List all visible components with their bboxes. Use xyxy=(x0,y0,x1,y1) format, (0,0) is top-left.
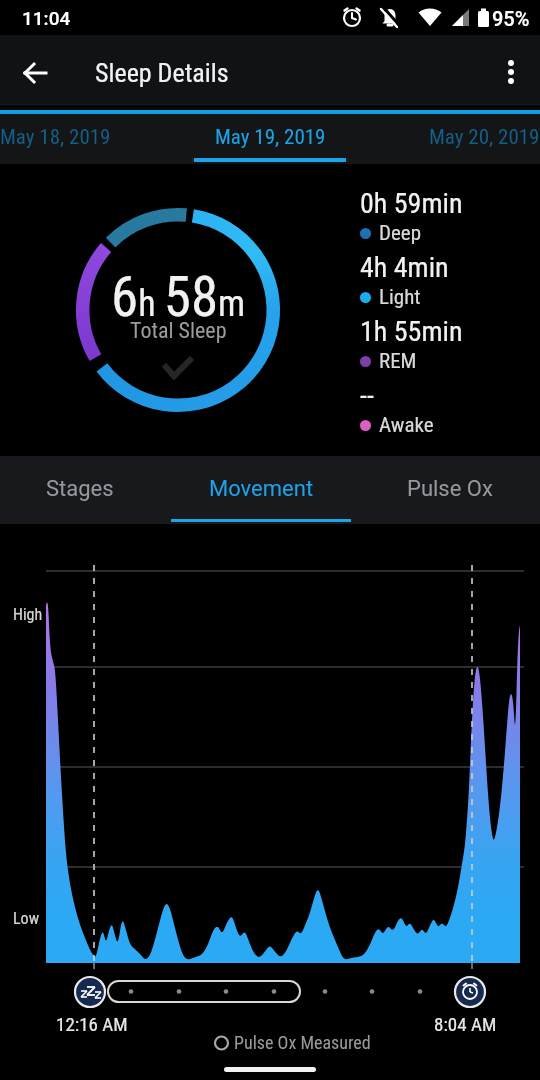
staticText: 4h 4min xyxy=(360,251,449,284)
staticText: 8:04 AM xyxy=(434,1013,497,1035)
button[interactable]: Stages xyxy=(0,456,180,522)
staticText: Sleep Details xyxy=(95,58,229,88)
staticText: High xyxy=(13,605,43,624)
staticText: 12:16 AM xyxy=(56,1013,128,1035)
staticText: Stages xyxy=(46,476,114,502)
staticText: May 19, 2019 xyxy=(215,125,326,150)
button[interactable] xyxy=(14,51,58,95)
button[interactable]: Pulse Ox xyxy=(360,456,540,522)
staticText: REM xyxy=(379,349,417,374)
staticText: 11:04 xyxy=(22,7,71,29)
button[interactable]: May 20, 2019 xyxy=(429,125,540,150)
button[interactable] xyxy=(490,52,532,94)
staticText: Light xyxy=(379,285,421,310)
staticText: 0h 59min xyxy=(360,187,463,220)
staticText: 1h 55min xyxy=(360,315,463,348)
staticText: Deep xyxy=(379,221,422,246)
button[interactable] xyxy=(73,975,107,1009)
button[interactable]: Pulse Ox Measured xyxy=(213,1032,371,1053)
staticText: 6h 58m xyxy=(111,265,246,329)
staticText: Pulse Ox Measured xyxy=(234,1032,371,1053)
button[interactable]: May 19, 2019 xyxy=(194,114,346,164)
button[interactable] xyxy=(453,975,487,1009)
staticText: -- xyxy=(360,379,374,412)
staticText: Total Sleep xyxy=(130,318,227,344)
staticText: 95% xyxy=(492,7,530,30)
staticText: Movement xyxy=(209,476,314,502)
staticText: Awake xyxy=(379,413,434,438)
button[interactable]: Movement xyxy=(180,456,360,522)
button[interactable]: May 18, 2019 xyxy=(0,125,111,150)
staticText: Pulse Ox xyxy=(407,476,493,502)
staticText: Low xyxy=(13,909,40,928)
